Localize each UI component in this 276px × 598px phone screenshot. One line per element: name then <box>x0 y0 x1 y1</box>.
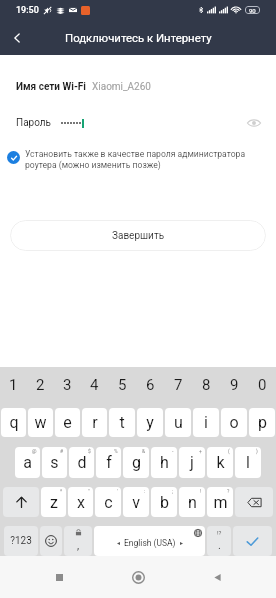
staticText: + <box>199 448 202 454</box>
button[interactable]: Имя сети Wi-Fi <box>0 76 276 98</box>
staticText: 9 <box>230 376 239 394</box>
button[interactable]: v <box>123 487 149 517</box>
staticText: a <box>23 453 32 472</box>
button[interactable]: del <box>235 487 273 517</box>
button[interactable]: y <box>137 408 163 437</box>
staticText: j <box>190 453 194 472</box>
button[interactable]: m <box>207 487 233 517</box>
button[interactable]: 5 <box>108 373 136 397</box>
staticText: : <box>144 488 146 494</box>
button[interactable]: l <box>235 447 261 478</box>
button[interactable]: Завершить <box>10 220 266 251</box>
button[interactable]: j <box>179 447 205 478</box>
staticText: English (USA) <box>124 538 176 548</box>
staticText: - <box>172 448 174 454</box>
staticText: t <box>119 413 125 432</box>
button[interactable]: 0 <box>248 373 276 397</box>
button[interactable]: z <box>41 487 66 517</box>
staticText: Подключитесь к Интернету <box>65 31 212 44</box>
staticText: 8 <box>202 376 211 394</box>
button[interactable]: 1 <box>0 373 27 397</box>
staticText: 4 <box>90 376 99 394</box>
staticText: w <box>34 413 47 432</box>
staticText: " <box>88 488 90 494</box>
staticText: !? <box>217 529 222 536</box>
button[interactable]: emoji <box>40 526 62 556</box>
staticText: Имя сети Wi-Fi <box>16 81 86 93</box>
staticText: 5 <box>118 376 127 394</box>
staticText: u <box>174 413 183 432</box>
staticText: 0 <box>258 376 267 394</box>
button[interactable]: f <box>96 447 121 478</box>
staticText: s <box>50 453 59 472</box>
button[interactable]: a <box>15 447 40 478</box>
staticText: y <box>146 413 154 432</box>
button[interactable]: 9 <box>220 373 248 397</box>
button[interactable]: b <box>151 487 177 517</box>
staticText: v <box>132 493 140 512</box>
staticText: k <box>216 453 225 472</box>
button[interactable]: Recents <box>39 557 79 597</box>
staticText: f <box>106 453 112 472</box>
staticText: r <box>92 413 98 432</box>
button[interactable]: d <box>69 447 94 478</box>
staticText: z <box>50 493 58 512</box>
button[interactable]: 2 <box>27 373 54 397</box>
button[interactable]: ?123 <box>4 526 38 556</box>
staticText: 2 <box>36 376 45 394</box>
staticText: x <box>77 493 85 512</box>
staticText: * <box>60 488 63 494</box>
button[interactable]: c <box>95 487 121 517</box>
staticText: b <box>160 493 169 512</box>
button[interactable]: w <box>28 408 53 437</box>
button[interactable]: x <box>68 487 93 517</box>
staticText: & <box>142 448 146 454</box>
staticText: @ <box>32 448 37 454</box>
staticText: 6 <box>146 376 155 394</box>
staticText: ! <box>200 488 202 494</box>
staticText: ?123 <box>10 535 32 547</box>
button[interactable]: Пароль <box>0 112 276 134</box>
button[interactable]: shift <box>3 487 39 517</box>
staticText: Установить также в качестве пароля админ… <box>25 149 246 170</box>
staticText: 1 <box>9 376 18 394</box>
button[interactable]: Back <box>197 557 237 597</box>
staticText: ; <box>172 488 174 494</box>
staticText: m <box>213 493 228 512</box>
button[interactable]: 7 <box>164 373 192 397</box>
button[interactable]: 8 <box>192 373 220 397</box>
button[interactable]: , <box>64 526 92 556</box>
staticText: 90 <box>249 7 256 14</box>
staticText: ' <box>117 488 118 494</box>
button[interactable]: Home <box>118 557 158 597</box>
button[interactable]: q <box>1 408 26 437</box>
button[interactable]: !? <box>207 526 231 556</box>
button[interactable]: 3 <box>54 373 81 397</box>
button[interactable]: Установить также в качестве пароля админ… <box>0 149 276 170</box>
button[interactable]: p <box>249 408 275 437</box>
button[interactable]: s <box>42 447 67 478</box>
staticText: 3 <box>63 376 72 394</box>
button[interactable]: h <box>151 447 177 478</box>
button[interactable]: k <box>207 447 233 478</box>
button[interactable]: Show password <box>243 112 265 134</box>
button[interactable]: g <box>123 447 149 478</box>
button[interactable]: i <box>193 408 219 437</box>
button[interactable]: o <box>221 408 247 437</box>
button[interactable]: enter <box>233 526 272 556</box>
staticText: 7 <box>174 376 183 394</box>
button[interactable]: English (USA) <box>94 526 205 556</box>
button[interactable]: r <box>82 408 107 437</box>
button[interactable]: Back <box>0 20 34 55</box>
button[interactable]: 6 <box>136 373 164 397</box>
button[interactable]: u <box>165 408 191 437</box>
staticText: ( <box>228 448 230 454</box>
staticText: Пароль <box>16 117 52 129</box>
button[interactable]: e <box>55 408 80 437</box>
button[interactable]: n <box>179 487 205 517</box>
staticText: # <box>60 448 64 454</box>
staticText: ? <box>227 488 230 494</box>
button[interactable]: 4 <box>81 373 108 397</box>
button[interactable]: t <box>109 408 135 437</box>
staticText: h <box>160 453 169 472</box>
